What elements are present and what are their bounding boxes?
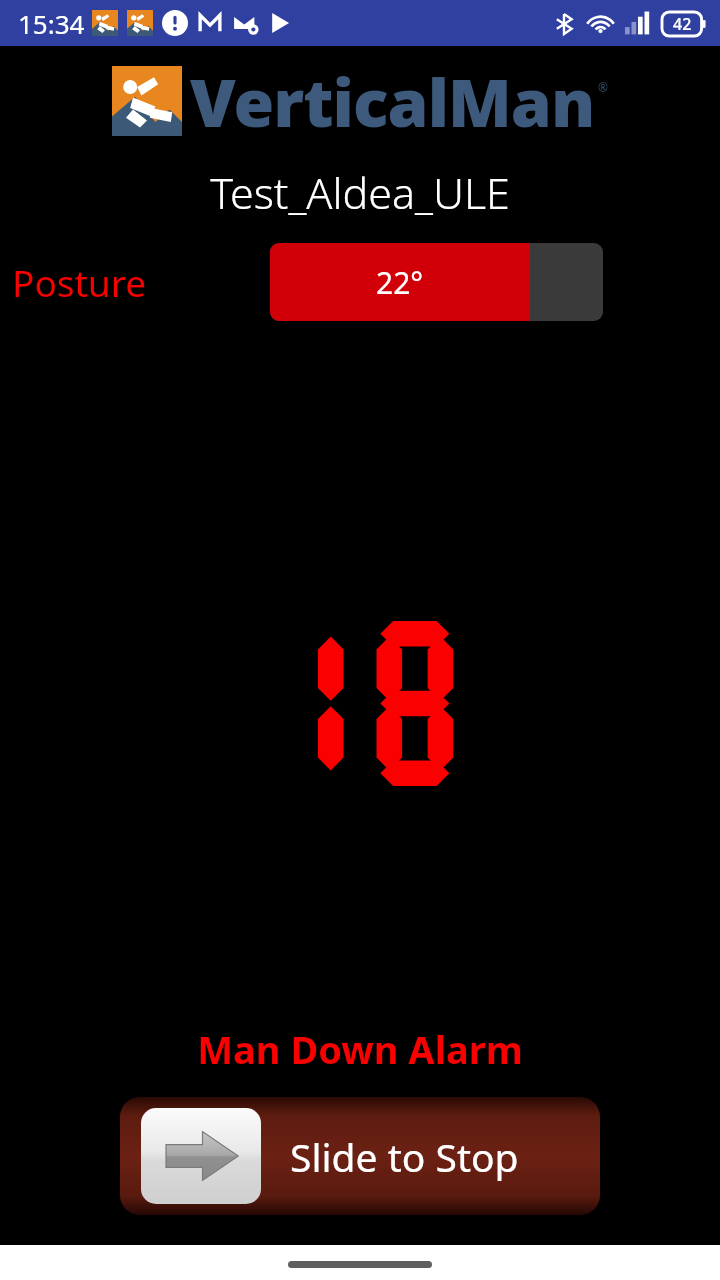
staticText: 22°	[376, 262, 424, 303]
staticText: VerticalMan	[190, 56, 595, 146]
staticText: Posture	[12, 257, 147, 307]
button[interactable]: 22°	[270, 243, 603, 321]
staticText: Slide to Stop	[290, 1130, 519, 1183]
staticText: Test_Aldea_ULE	[0, 163, 720, 222]
staticText: Man Down Alarm	[0, 1023, 720, 1075]
staticText: 15:34	[18, 6, 85, 41]
button[interactable]	[288, 1261, 432, 1268]
button[interactable]: Slide to stop alarm	[141, 1108, 261, 1204]
staticText: ®	[598, 79, 608, 95]
staticText: 42	[673, 13, 692, 35]
button[interactable]: Slide to Stop	[120, 1097, 600, 1215]
